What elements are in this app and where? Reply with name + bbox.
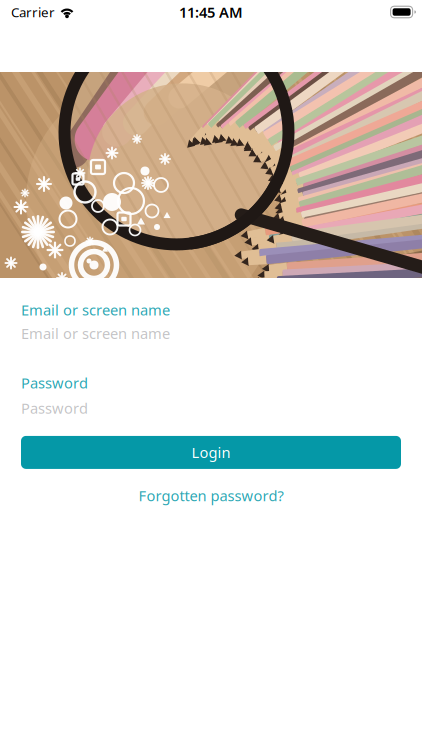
staticText: Email or screen name xyxy=(21,323,170,343)
button[interactable]: Forgotten password? xyxy=(21,486,401,505)
staticText: Carrier xyxy=(11,3,55,21)
button[interactable]: Email or screen name xyxy=(21,323,401,343)
staticText: Forgotten password? xyxy=(138,486,283,505)
staticText: Password xyxy=(21,373,88,392)
button[interactable]: Login xyxy=(21,436,401,469)
button[interactable]: Password xyxy=(21,398,401,418)
staticText: Login xyxy=(191,443,230,462)
staticText: Email or screen name xyxy=(21,300,170,319)
staticText: 11:45 AM xyxy=(179,2,243,22)
staticText: Password xyxy=(21,398,88,418)
